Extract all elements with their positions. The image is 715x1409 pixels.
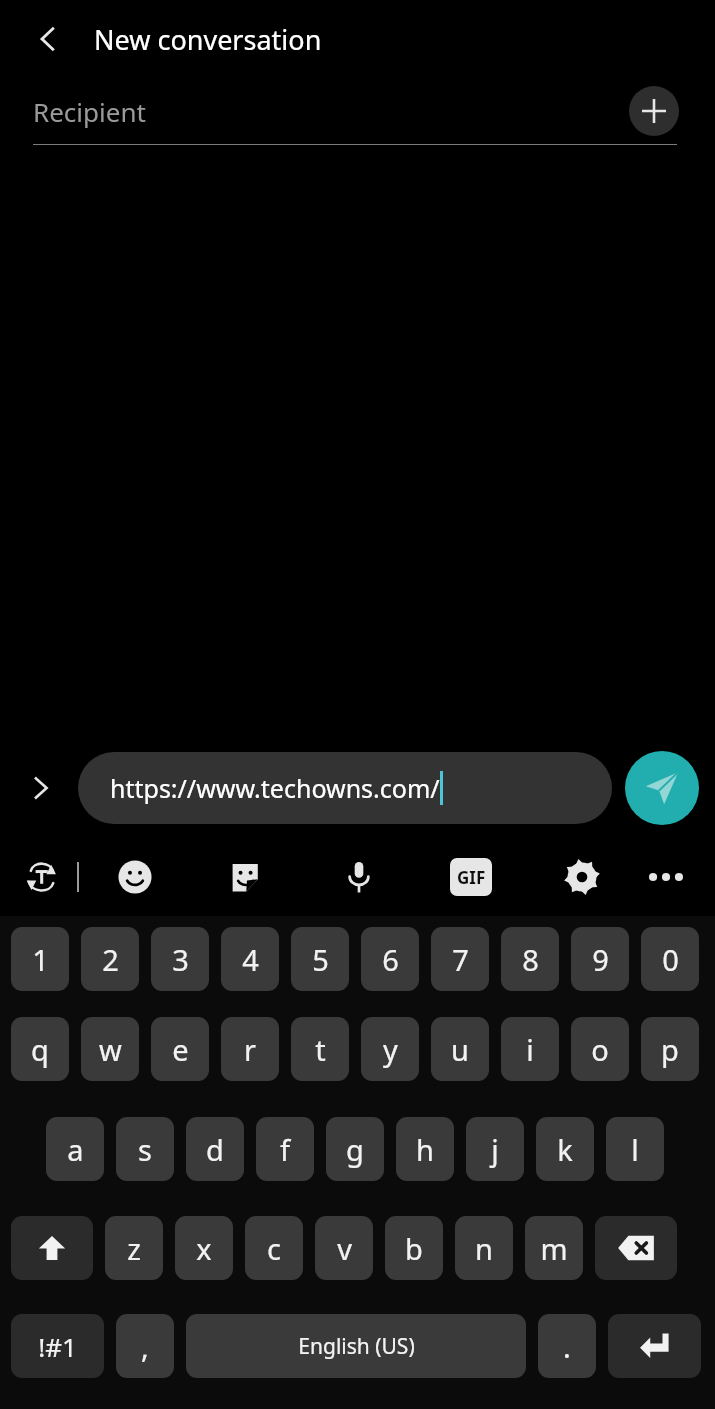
button[interactable]: Backspace — [595, 1216, 677, 1280]
button[interactable]: a — [46, 1117, 104, 1181]
button[interactable]: 4 — [221, 927, 279, 991]
staticText: j — [491, 1130, 499, 1169]
staticText: s — [138, 1130, 152, 1169]
button[interactable]: More options — [640, 838, 692, 916]
staticText: https://www.techowns.com/ — [110, 771, 440, 805]
button[interactable]: 9 — [571, 927, 629, 991]
button[interactable]: w — [81, 1017, 139, 1081]
button[interactable]: 8 — [501, 927, 559, 991]
button[interactable]: Settings — [556, 838, 608, 916]
staticText: !#1 — [38, 1329, 77, 1364]
button[interactable]: Show more options — [12, 759, 70, 817]
button[interactable]: Translate — [16, 838, 66, 916]
button[interactable]: GIF — [446, 838, 496, 916]
staticText: . — [563, 1327, 571, 1366]
staticText: 5 — [312, 940, 329, 979]
button[interactable]: Stickers — [222, 838, 272, 916]
button[interactable]: c — [245, 1216, 303, 1280]
staticText: , — [141, 1327, 149, 1366]
button[interactable]: i — [501, 1017, 559, 1081]
button[interactable]: f — [256, 1117, 314, 1181]
staticText: m — [540, 1229, 568, 1268]
staticText: e — [172, 1030, 189, 1069]
button[interactable]: Voice input — [334, 838, 384, 916]
button[interactable]: Send — [625, 751, 699, 825]
button[interactable]: l — [606, 1117, 664, 1181]
button[interactable]: y — [361, 1017, 419, 1081]
button[interactable]: Symbols — [11, 1314, 104, 1378]
button[interactable]: 5 — [291, 927, 349, 991]
staticText: y — [383, 1030, 398, 1069]
staticText: 1 — [32, 940, 49, 979]
staticText: v — [337, 1229, 352, 1268]
button[interactable]: b — [385, 1216, 443, 1280]
button[interactable]: Space — [186, 1314, 526, 1378]
staticText: New conversation — [94, 21, 322, 58]
staticText: Recipient — [33, 94, 146, 129]
button[interactable]: 1 — [11, 927, 69, 991]
staticText: h — [416, 1130, 434, 1169]
staticText: i — [526, 1030, 534, 1069]
button[interactable]: https://www.techowns.com/ — [78, 752, 612, 824]
staticText: 2 — [102, 940, 119, 979]
staticText: u — [451, 1030, 469, 1069]
staticText: o — [591, 1030, 609, 1069]
button[interactable]: o — [571, 1017, 629, 1081]
button[interactable]: 3 — [151, 927, 209, 991]
button[interactable]: e — [151, 1017, 209, 1081]
staticText: f — [280, 1130, 290, 1169]
staticText: l — [631, 1130, 639, 1169]
staticText: b — [405, 1229, 423, 1268]
button[interactable]: z — [105, 1216, 163, 1280]
staticText: g — [346, 1130, 364, 1169]
staticText: p — [661, 1030, 679, 1069]
staticText: q — [31, 1030, 49, 1069]
button[interactable]: s — [116, 1117, 174, 1181]
button[interactable]: k — [536, 1117, 594, 1181]
button[interactable]: u — [431, 1017, 489, 1081]
staticText: GIF — [457, 866, 486, 889]
button[interactable]: p — [641, 1017, 699, 1081]
staticText: n — [475, 1229, 493, 1268]
button[interactable]: g — [326, 1117, 384, 1181]
staticText: t — [315, 1030, 326, 1069]
button[interactable]: r — [221, 1017, 279, 1081]
staticText: 9 — [592, 940, 609, 979]
button[interactable]: v — [315, 1216, 373, 1280]
staticText: z — [127, 1229, 141, 1268]
button[interactable]: 7 — [431, 927, 489, 991]
staticText: r — [244, 1030, 256, 1069]
button[interactable]: d — [186, 1117, 244, 1181]
staticText: d — [206, 1130, 224, 1169]
button[interactable]: 6 — [361, 927, 419, 991]
button[interactable]: h — [396, 1117, 454, 1181]
button[interactable]: q — [11, 1017, 69, 1081]
button[interactable]: 2 — [81, 927, 139, 991]
staticText: 4 — [242, 940, 259, 979]
button[interactable]: 0 — [641, 927, 699, 991]
button[interactable]: x — [175, 1216, 233, 1280]
staticText: 8 — [522, 940, 539, 979]
staticText: c — [267, 1229, 281, 1268]
button[interactable]: Enter — [608, 1314, 701, 1378]
button[interactable]: j — [466, 1117, 524, 1181]
staticText: a — [67, 1130, 84, 1169]
staticText: 3 — [172, 940, 189, 979]
staticText: 0 — [662, 940, 679, 979]
staticText: 7 — [452, 940, 469, 979]
button[interactable]: Emoji — [110, 838, 160, 916]
button[interactable]: Add recipient — [629, 86, 679, 136]
button[interactable]: t — [291, 1017, 349, 1081]
staticText: x — [196, 1229, 212, 1268]
button[interactable]: Period — [538, 1314, 596, 1378]
button[interactable]: m — [525, 1216, 583, 1280]
button[interactable]: Back — [20, 11, 76, 67]
staticText: 6 — [382, 940, 399, 979]
button[interactable]: Shift — [11, 1216, 93, 1280]
staticText: English (US) — [298, 1332, 415, 1361]
staticText: k — [557, 1130, 573, 1169]
button[interactable]: Comma — [116, 1314, 174, 1378]
button[interactable]: n — [455, 1216, 513, 1280]
staticText: w — [99, 1030, 122, 1069]
